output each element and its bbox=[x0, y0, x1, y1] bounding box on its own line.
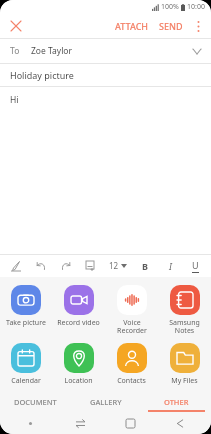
staticText: My Files bbox=[171, 376, 198, 386]
button[interactable]: Insert image bbox=[81, 256, 101, 276]
staticText: Location bbox=[64, 376, 93, 386]
button[interactable]: U bbox=[185, 256, 205, 276]
button[interactable]: More options bbox=[188, 16, 208, 36]
staticText: Samsung Notes bbox=[169, 318, 200, 335]
staticText: Record video bbox=[57, 318, 100, 328]
staticText: 10:00 bbox=[187, 2, 205, 12]
staticText: GALLERY bbox=[90, 397, 122, 407]
staticText: 12 bbox=[109, 260, 119, 271]
button[interactable]: Take picture bbox=[0, 283, 52, 330]
button[interactable]: Location bbox=[52, 341, 105, 388]
button[interactable]: DOCUMENT bbox=[0, 392, 71, 412]
staticText: Holiday picture bbox=[10, 69, 74, 81]
button[interactable]: Voice Recorder bbox=[105, 283, 158, 337]
button[interactable]: Home bbox=[105, 412, 155, 434]
button[interactable]: Redo bbox=[56, 256, 76, 276]
staticText: ATTACH bbox=[115, 20, 149, 32]
staticText: I bbox=[169, 260, 172, 272]
button[interactable]: Recents bbox=[55, 412, 105, 434]
button[interactable]: GALLERY bbox=[71, 392, 141, 412]
button[interactable]: OTHER bbox=[141, 392, 211, 412]
staticText: Contacts bbox=[117, 376, 146, 386]
button[interactable]: Contacts bbox=[105, 341, 158, 388]
button[interactable]: Samsung Notes bbox=[158, 283, 211, 337]
staticText: DOCUMENT bbox=[14, 397, 57, 407]
staticText: Calendar bbox=[11, 376, 41, 386]
button[interactable]: SEND bbox=[154, 15, 188, 37]
staticText: OTHER bbox=[164, 397, 189, 407]
button[interactable]: To bbox=[0, 39, 211, 63]
button[interactable]: ATTACH bbox=[110, 15, 154, 37]
button[interactable]: Record video bbox=[52, 283, 105, 330]
button[interactable]: Holiday picture bbox=[0, 64, 211, 86]
staticText: Take picture bbox=[6, 318, 46, 328]
staticText: To bbox=[10, 45, 20, 57]
staticText: B bbox=[142, 260, 148, 272]
button[interactable]: Close bbox=[4, 14, 28, 38]
button[interactable]: My Files bbox=[158, 341, 211, 388]
staticText: Hi bbox=[10, 94, 19, 106]
staticText: U bbox=[192, 259, 199, 271]
button[interactable]: I bbox=[160, 256, 180, 276]
button[interactable]: Pen bbox=[6, 256, 26, 276]
button[interactable]: 12 bbox=[106, 256, 130, 275]
button[interactable]: Assistant bbox=[6, 412, 55, 434]
staticText: 100% bbox=[161, 2, 179, 12]
button[interactable]: Undo bbox=[31, 256, 51, 276]
staticText: Zoe Taylor bbox=[31, 45, 73, 57]
button[interactable]: Back bbox=[155, 412, 205, 434]
staticText: Voice Recorder bbox=[117, 318, 147, 335]
button[interactable]: B bbox=[135, 256, 155, 276]
staticText: SEND bbox=[159, 20, 183, 32]
button[interactable]: Calendar bbox=[0, 341, 52, 388]
